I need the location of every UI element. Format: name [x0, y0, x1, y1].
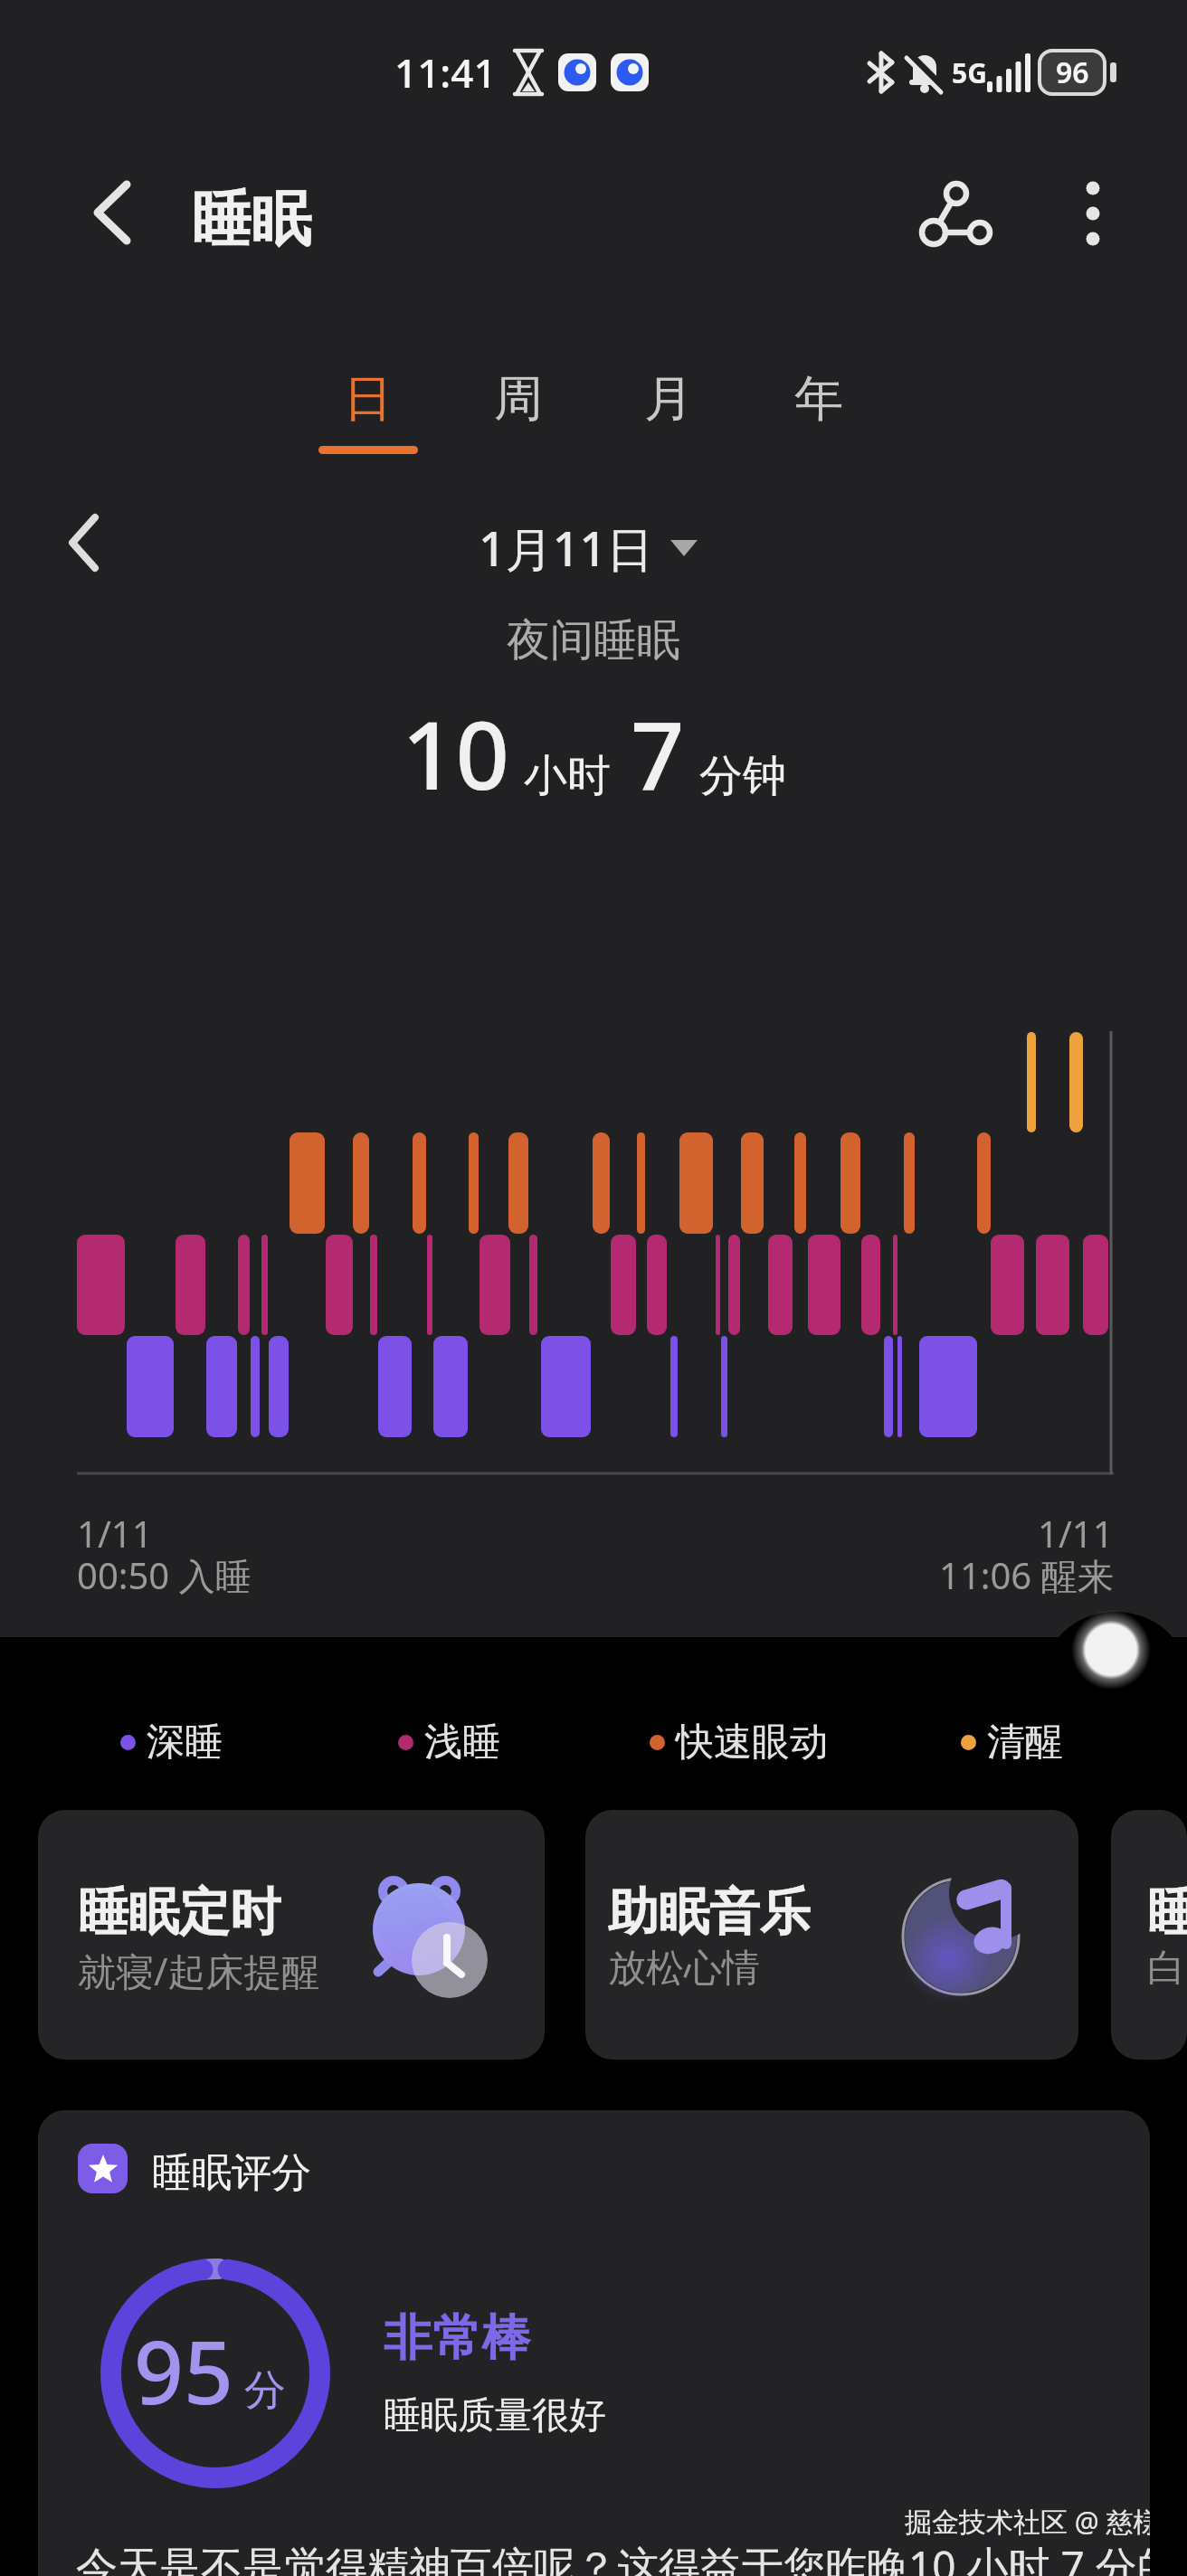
button[interactable]: 睡眠定时	[38, 1810, 545, 2060]
staticText: 7	[631, 689, 685, 818]
staticText: 10	[402, 689, 509, 818]
staticText: 浅睡	[424, 1719, 500, 1766]
button[interactable]: 日	[293, 360, 443, 438]
button[interactable]	[1021, 1574, 1187, 1755]
staticText: 年	[794, 368, 843, 430]
staticText: 5G	[952, 54, 987, 91]
button[interactable]: 1月11日	[479, 516, 698, 580]
button[interactable]	[71, 172, 152, 253]
staticText: 深睡	[147, 1719, 223, 1766]
staticText: 分钟	[699, 749, 786, 803]
staticText: 00:50 入睡	[77, 1550, 252, 1600]
button[interactable]	[1057, 170, 1129, 257]
button[interactable]: 月	[593, 360, 744, 438]
button[interactable]: 周	[443, 360, 593, 438]
staticText: 月	[644, 368, 693, 430]
button[interactable]: 睡眠评分	[38, 2110, 1150, 2576]
staticText: 快速眼动	[676, 1719, 828, 1766]
staticText: 睡眠评分	[152, 2148, 311, 2198]
staticText: 睡眠环境	[1147, 1880, 1187, 1945]
staticText: 分	[244, 2364, 286, 2417]
staticText: 就寝/起床提醒	[78, 1945, 320, 1996]
staticText: 11:41	[394, 45, 497, 99]
staticText: 放松心情	[608, 1945, 760, 1993]
button[interactable]	[907, 170, 1008, 257]
staticText: 今天是不是觉得精神百倍呢？这得益于您昨晚10 小时 7 分的	[76, 2537, 1150, 2576]
staticText: 睡眠质量很好	[384, 2392, 606, 2439]
staticText: 小时	[524, 749, 611, 803]
staticText: 1/11	[77, 1509, 153, 1558]
staticText: 掘金技术社区 @ 慈様ya	[905, 2503, 1150, 2540]
staticText: 白噪声	[1147, 1945, 1187, 1993]
staticText: 清醒	[987, 1719, 1063, 1766]
staticText: 11:06 醒来	[939, 1550, 1114, 1600]
button[interactable]: 年	[744, 360, 894, 438]
staticText: 睡眠定时	[78, 1880, 280, 1945]
staticText: 1/11	[1038, 1509, 1114, 1558]
button[interactable]: 助眠音乐	[585, 1810, 1078, 2060]
staticText: 非常棒	[384, 2307, 530, 2369]
staticText: 96	[1056, 52, 1089, 92]
button[interactable]	[45, 499, 121, 586]
staticText: 睡眠	[192, 182, 311, 257]
staticText: 95	[134, 2311, 233, 2429]
button[interactable]: 睡眠环境	[1111, 1810, 1187, 2060]
staticText: 日	[344, 368, 393, 430]
staticText: 1月11日	[479, 516, 654, 580]
staticText: 周	[494, 368, 543, 430]
staticText: 夜间睡眠	[507, 613, 680, 668]
staticText: 助眠音乐	[608, 1880, 811, 1945]
